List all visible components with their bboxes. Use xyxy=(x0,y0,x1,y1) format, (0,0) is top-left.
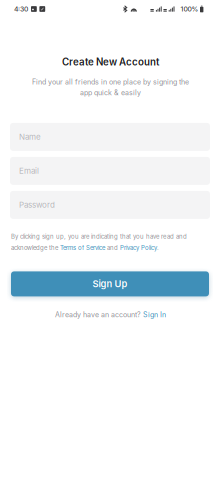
staticText: app quick & easily xyxy=(80,88,141,97)
staticText: Create New Account xyxy=(62,56,159,68)
staticText: Privacy Policy xyxy=(120,244,157,251)
staticText: By clicking sign up, you are indicating … xyxy=(11,233,187,240)
staticText: Email xyxy=(19,166,39,176)
staticText: Password xyxy=(19,200,55,210)
staticText: Find your all friends in one place by si… xyxy=(32,78,189,86)
staticText: Sign Up xyxy=(92,278,127,290)
staticText: Terms of Service xyxy=(60,244,105,251)
staticText: Already have an account? xyxy=(55,310,143,319)
button[interactable]: Privacy Policy xyxy=(120,244,157,251)
staticText: 100% xyxy=(180,5,198,13)
staticText: 4:30 xyxy=(14,5,28,13)
staticText: acknowledge the xyxy=(11,244,60,251)
staticText: . xyxy=(157,244,159,251)
button[interactable]: Sign Up xyxy=(11,271,209,296)
staticText: Name xyxy=(19,132,41,142)
button[interactable]: Terms of Service xyxy=(60,244,105,251)
staticText: Sign In xyxy=(143,310,166,319)
staticText: and xyxy=(105,244,120,251)
button[interactable]: Already have an account? xyxy=(55,310,166,319)
